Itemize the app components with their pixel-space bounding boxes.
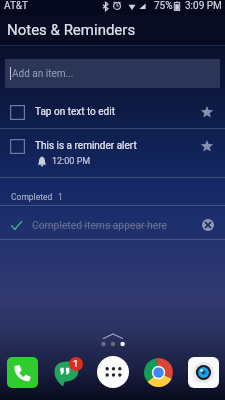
button[interactable]: Clear completed <box>202 219 214 231</box>
button[interactable]: Mark complete <box>0 95 225 128</box>
button[interactable]: Notes & Reminders <box>0 15 225 45</box>
button[interactable]: Phone <box>7 357 38 388</box>
staticText: 75% <box>154 0 173 12</box>
button[interactable]: Completed items appear here <box>0 206 225 239</box>
staticText: Completed items appear here <box>32 219 168 231</box>
staticText: 3:09 PM <box>185 0 222 12</box>
staticText: This is a reminder alert <box>35 140 137 152</box>
button[interactable]: Mark complete <box>10 105 25 120</box>
staticText: 1 <box>73 359 79 370</box>
button[interactable]: Star <box>201 140 213 152</box>
button[interactable]: Hangouts <box>52 357 83 388</box>
button[interactable]: All apps <box>97 356 129 388</box>
staticText: Add an item... <box>12 68 74 80</box>
button[interactable]: Mark complete <box>10 139 25 154</box>
staticText: Completed <box>11 192 53 202</box>
staticText: Notes & Reminders <box>7 21 136 39</box>
button[interactable]: Chrome <box>143 357 174 388</box>
button[interactable]: Add an item... <box>5 59 220 88</box>
button[interactable]: Mark complete <box>0 129 225 177</box>
staticText: 12:00 PM <box>52 156 91 167</box>
button[interactable]: Camera <box>188 357 219 388</box>
staticText: Tap on text to edit <box>35 106 115 118</box>
staticText: AT&T <box>4 0 29 12</box>
staticText: 1 <box>58 192 63 202</box>
button[interactable]: Star <box>201 106 213 118</box>
